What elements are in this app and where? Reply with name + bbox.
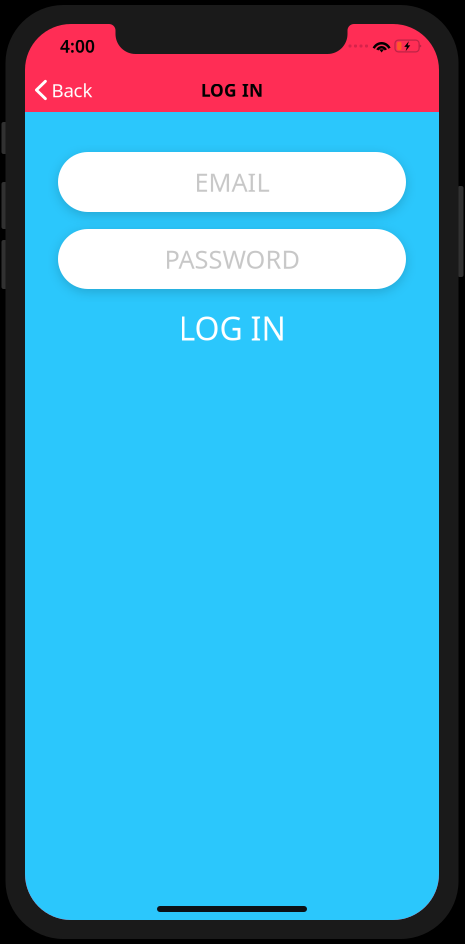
staticText: Back — [51, 78, 92, 102]
button[interactable]: EMAIL — [58, 152, 406, 212]
button[interactable]: LOG IN — [58, 307, 406, 349]
button[interactable]: Back — [25, 68, 100, 112]
button[interactable]: PASSWORD — [58, 229, 406, 289]
staticText: LOG IN — [178, 307, 285, 349]
staticText: PASSWORD — [164, 242, 299, 276]
staticText: 4:00 — [60, 34, 95, 57]
staticText: LOG IN — [201, 78, 263, 101]
staticText: EMAIL — [194, 165, 269, 199]
